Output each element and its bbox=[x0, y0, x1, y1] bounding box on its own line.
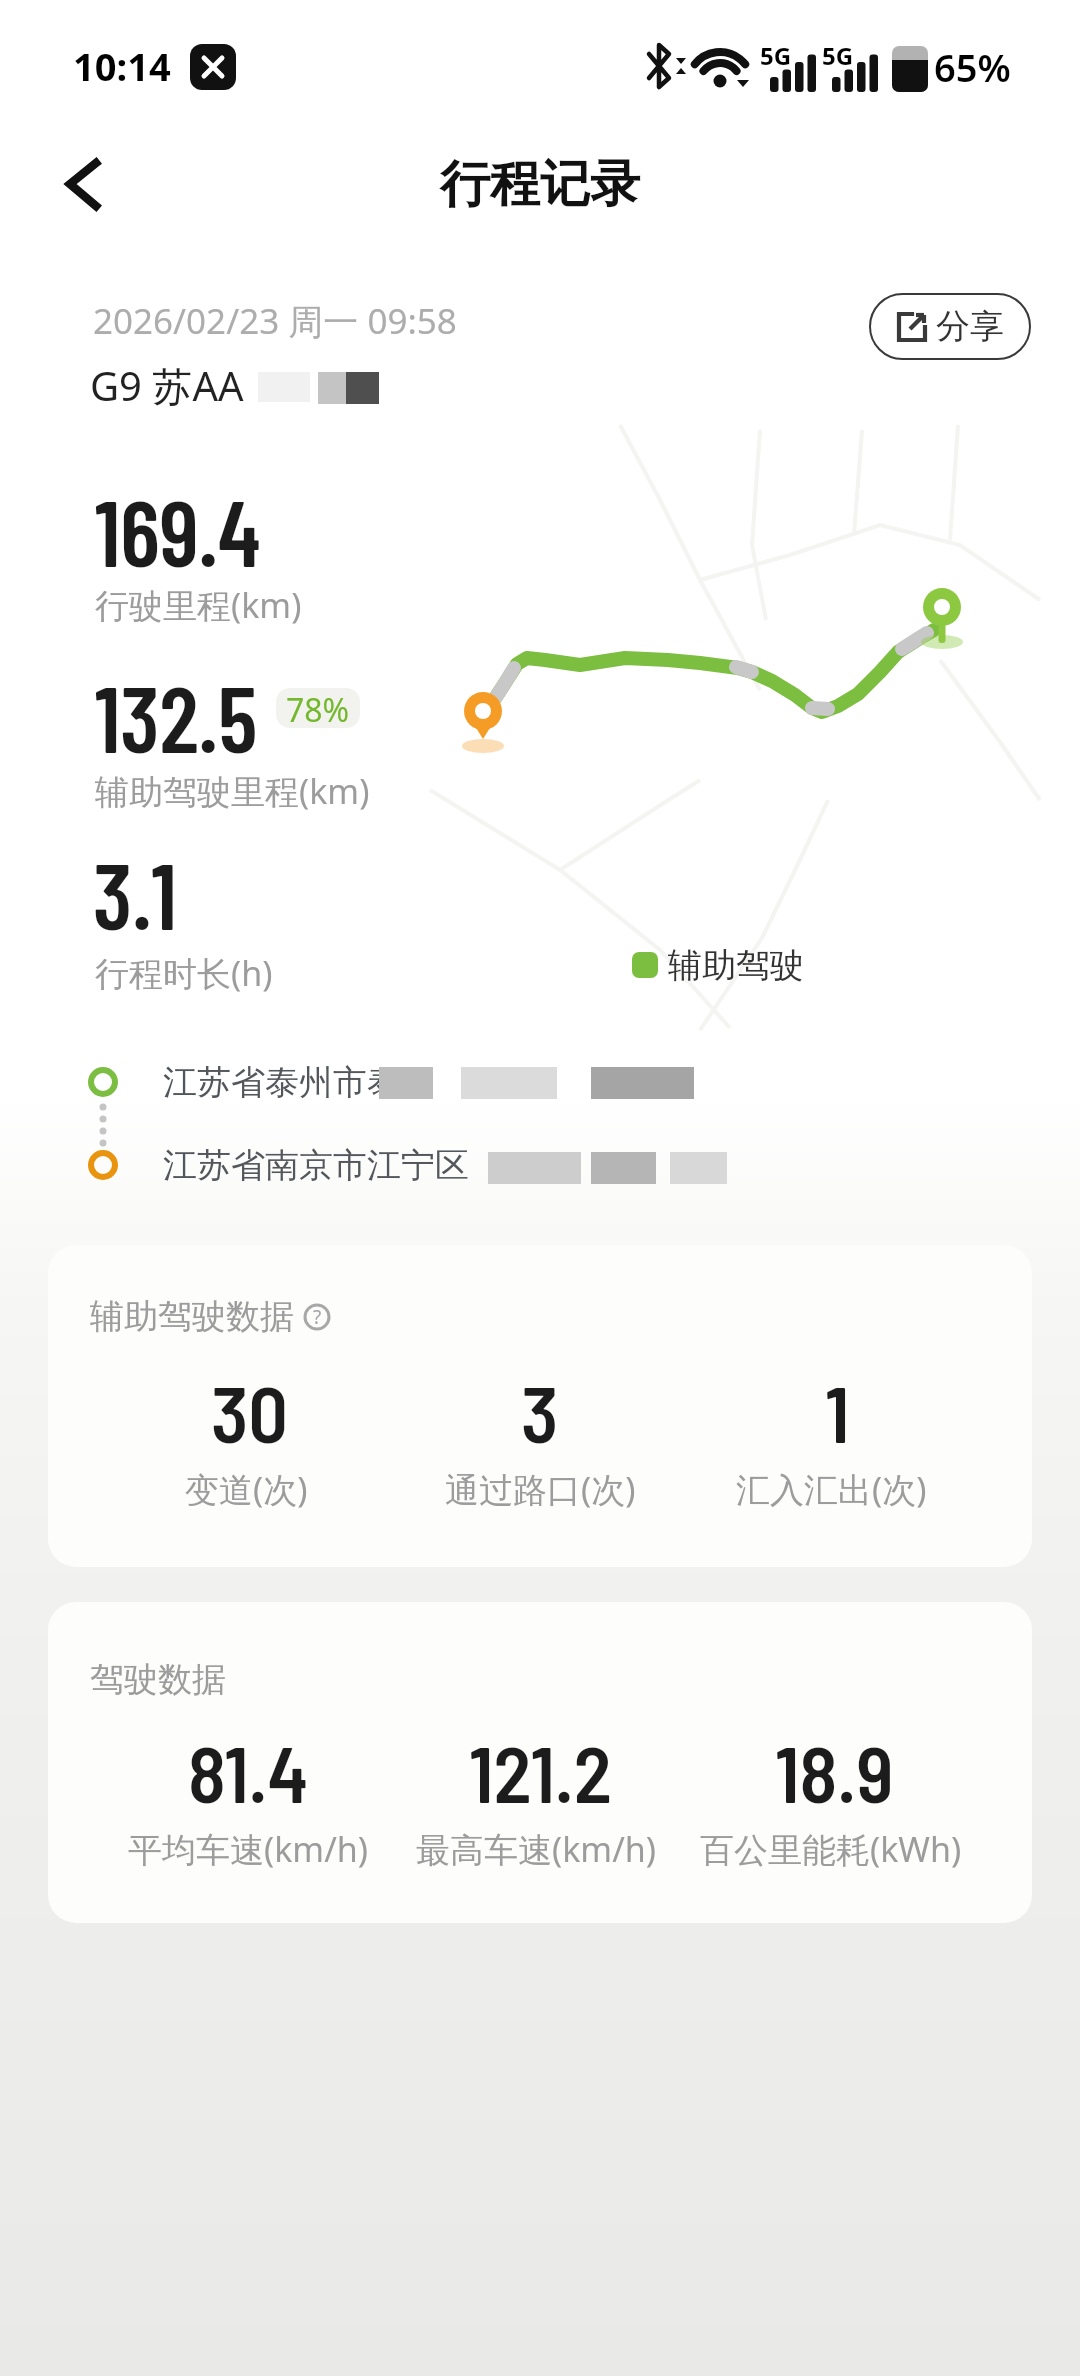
staticText: 变道(次) bbox=[185, 1466, 308, 1512]
staticText: 65% bbox=[934, 41, 1011, 93]
staticText: 81.4 bbox=[188, 1725, 309, 1819]
staticText: 行程时长(h) bbox=[95, 950, 273, 996]
staticText: G9 苏AA bbox=[90, 358, 244, 413]
staticText: 通过路口(次) bbox=[445, 1466, 636, 1512]
staticText: 辅助驾驶里程(km) bbox=[95, 768, 370, 814]
staticText: 分享 bbox=[936, 305, 1004, 348]
staticText: 5G bbox=[822, 39, 854, 72]
staticText: 江苏省南京市江宁区 bbox=[163, 1144, 469, 1187]
staticText: 2026/02/23 周一 09:58 bbox=[93, 297, 457, 345]
staticText: 驾驶数据 bbox=[90, 1658, 226, 1701]
staticText: 169.4 bbox=[95, 475, 261, 585]
staticText: 汇入汇出(次) bbox=[736, 1466, 927, 1512]
staticText: ? bbox=[313, 1304, 322, 1330]
staticText: 3 bbox=[521, 1365, 559, 1459]
staticText: 30 bbox=[211, 1365, 288, 1459]
staticText: 行驶里程(km) bbox=[95, 582, 302, 628]
staticText: 行程记录 bbox=[440, 153, 640, 216]
staticText: 5G bbox=[760, 39, 792, 72]
staticText: 3.1 bbox=[93, 838, 177, 948]
button[interactable]: ? bbox=[304, 1304, 330, 1330]
button[interactable]: 分享 bbox=[869, 293, 1031, 360]
staticText: 132.5 bbox=[95, 661, 258, 771]
staticText: 江苏省泰州市泰 bbox=[163, 1061, 401, 1104]
staticText: 辅助驾驶数据 bbox=[90, 1295, 294, 1338]
staticText: 百公里能耗(kWh) bbox=[700, 1826, 962, 1872]
staticText: 平均车速(km/h) bbox=[128, 1826, 369, 1872]
staticText: 78% bbox=[286, 688, 350, 728]
staticText: 1 bbox=[825, 1365, 850, 1459]
button[interactable] bbox=[50, 150, 120, 220]
staticText: 10:14 bbox=[73, 40, 171, 92]
staticText: 辅助驾驶 bbox=[668, 944, 804, 987]
staticText: 121.2 bbox=[469, 1725, 612, 1819]
staticText: 18.9 bbox=[775, 1725, 894, 1819]
staticText: 最高车速(km/h) bbox=[416, 1826, 657, 1872]
